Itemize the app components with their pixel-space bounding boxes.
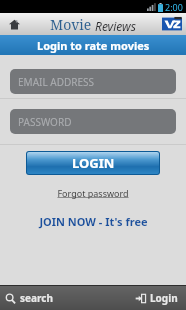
staticText: LOGIN (72, 154, 115, 172)
staticText: Login to rate movies (37, 38, 150, 53)
button[interactable]: JOIN NOW - It's free (35, 212, 152, 231)
staticText: search (20, 291, 53, 305)
staticText: PASSWORD (18, 115, 72, 129)
button[interactable]: Login (135, 286, 186, 310)
button[interactable]: search (0, 286, 135, 310)
button[interactable]: Forgot password (53, 185, 133, 201)
button[interactable]: Home (6, 16, 22, 32)
staticText: EMAIL ADDRESS (18, 75, 94, 89)
staticText: Movie (50, 15, 95, 34)
staticText: Reviews (95, 18, 136, 34)
button[interactable]: EMAIL ADDRESS (10, 69, 176, 94)
staticText: JOIN NOW - It's free (39, 214, 148, 229)
button[interactable]: Verizon (162, 16, 182, 32)
staticText: Login (150, 291, 178, 305)
staticText: Forgot password (57, 187, 129, 199)
staticText: 2:00 (165, 1, 183, 13)
button[interactable]: PASSWORD (10, 109, 176, 134)
button[interactable]: LOGIN (27, 152, 159, 174)
